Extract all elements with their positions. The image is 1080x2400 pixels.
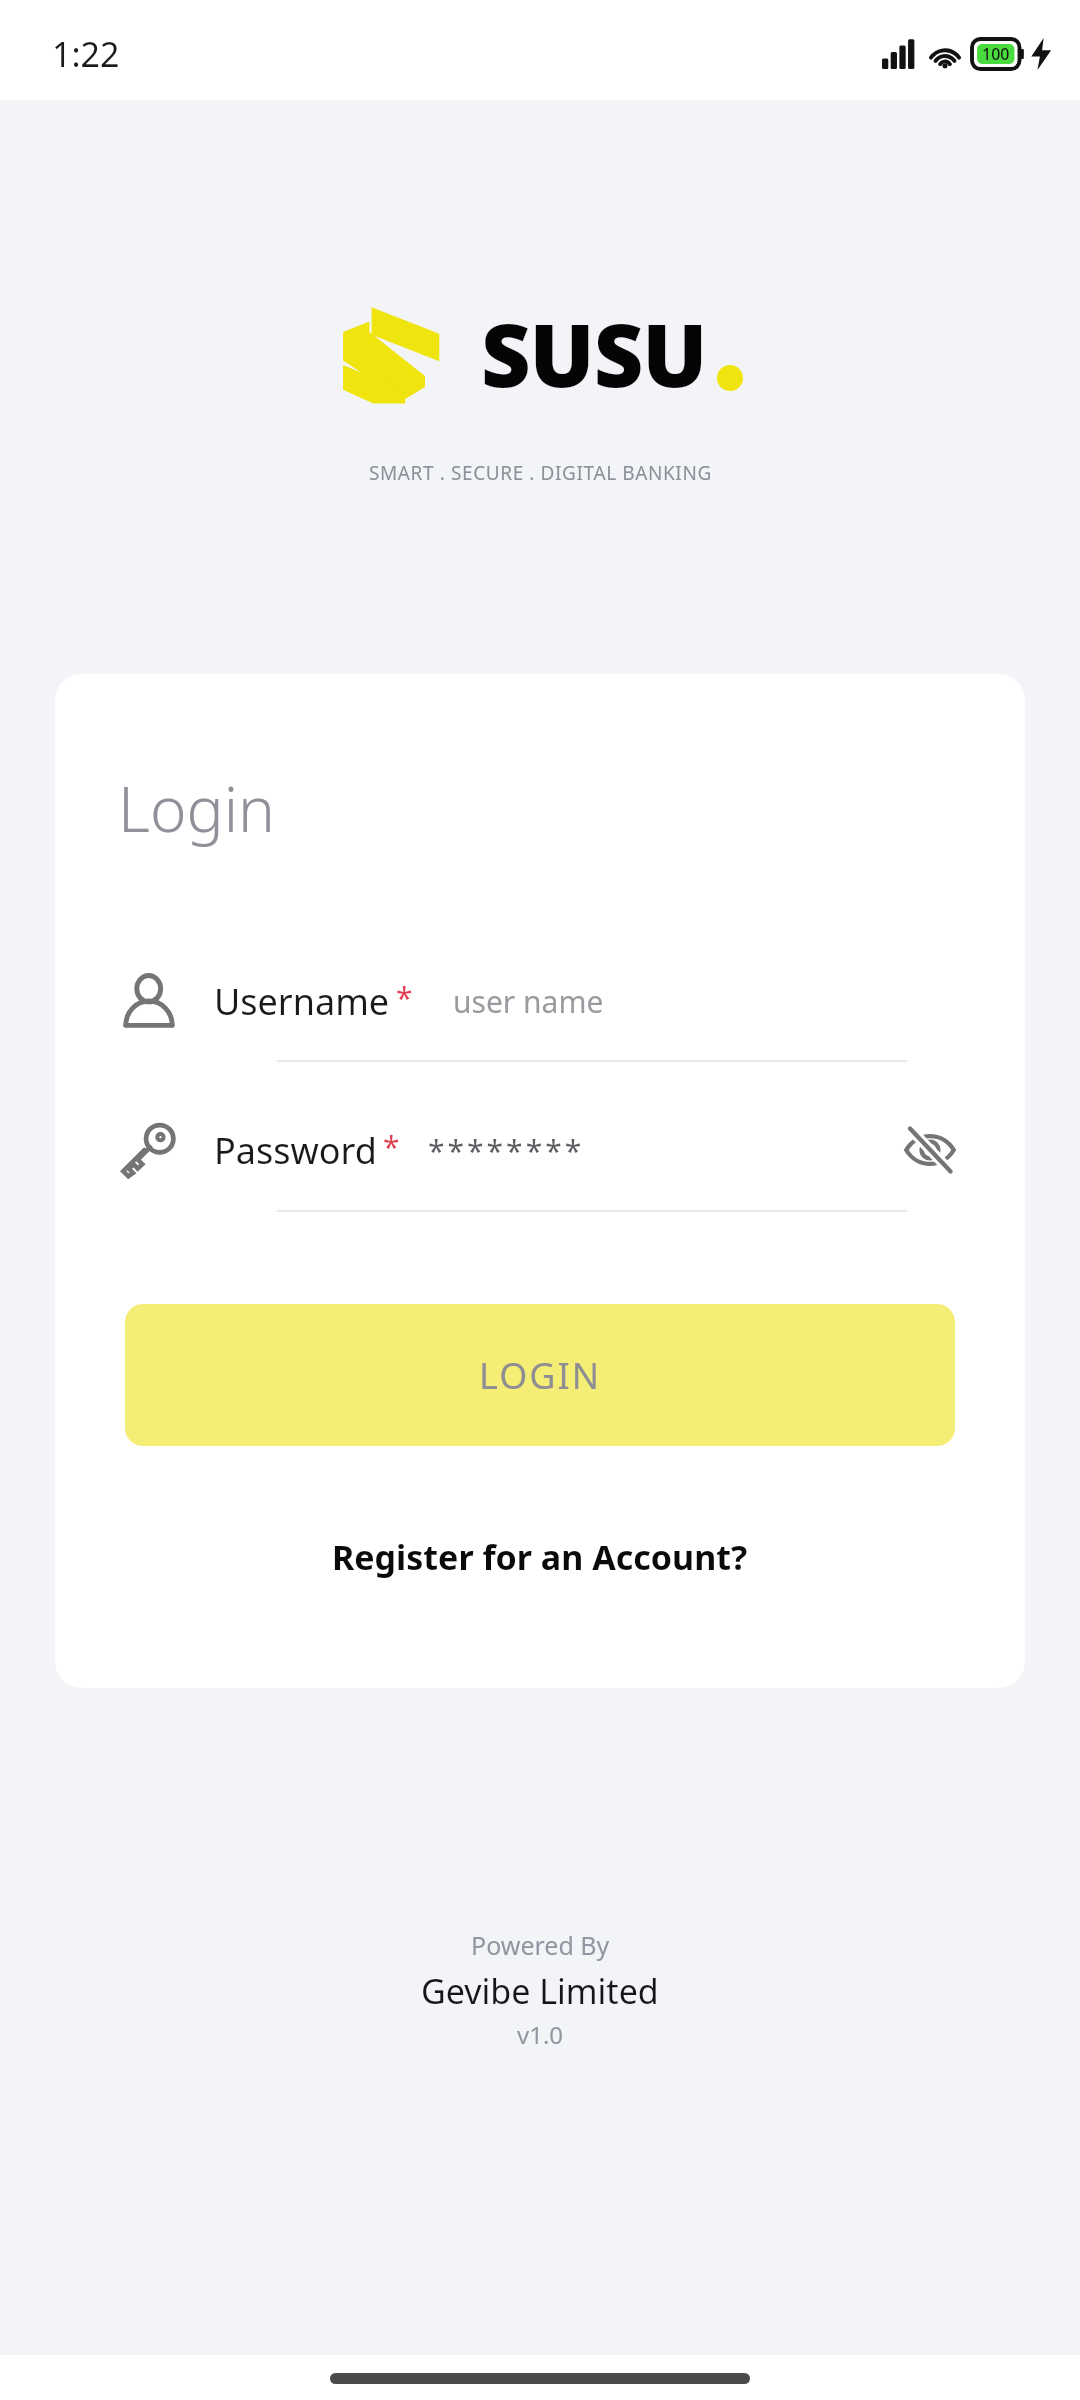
button[interactable]: LOGIN: [125, 1304, 955, 1446]
staticText: *: [396, 977, 413, 1018]
staticText: Register for an Account?: [332, 1534, 748, 1580]
button[interactable]: Show password: [898, 1118, 962, 1182]
staticText: 100: [982, 43, 1010, 65]
staticText: Username: [214, 977, 390, 1026]
staticText: Password: [214, 1126, 377, 1175]
staticText: *: [383, 1126, 400, 1167]
staticText: user name: [453, 981, 604, 1022]
staticText: SMART . SECURE . DIGITAL BANKING: [369, 460, 712, 486]
button[interactable]: Username: [55, 970, 1025, 1062]
button[interactable]: Password: [55, 1118, 1025, 1212]
staticText: SUSU: [481, 295, 707, 412]
staticText: Login: [118, 766, 275, 850]
staticText: ********: [428, 1130, 585, 1171]
button[interactable]: Register for an Account?: [55, 1526, 1025, 1588]
staticText: Powered By: [471, 1928, 610, 1962]
staticText: 1:22: [52, 31, 120, 77]
staticText: v1.0: [517, 2018, 564, 2051]
staticText: LOGIN: [479, 1351, 602, 1400]
staticText: Gevibe Limited: [421, 1968, 659, 2014]
